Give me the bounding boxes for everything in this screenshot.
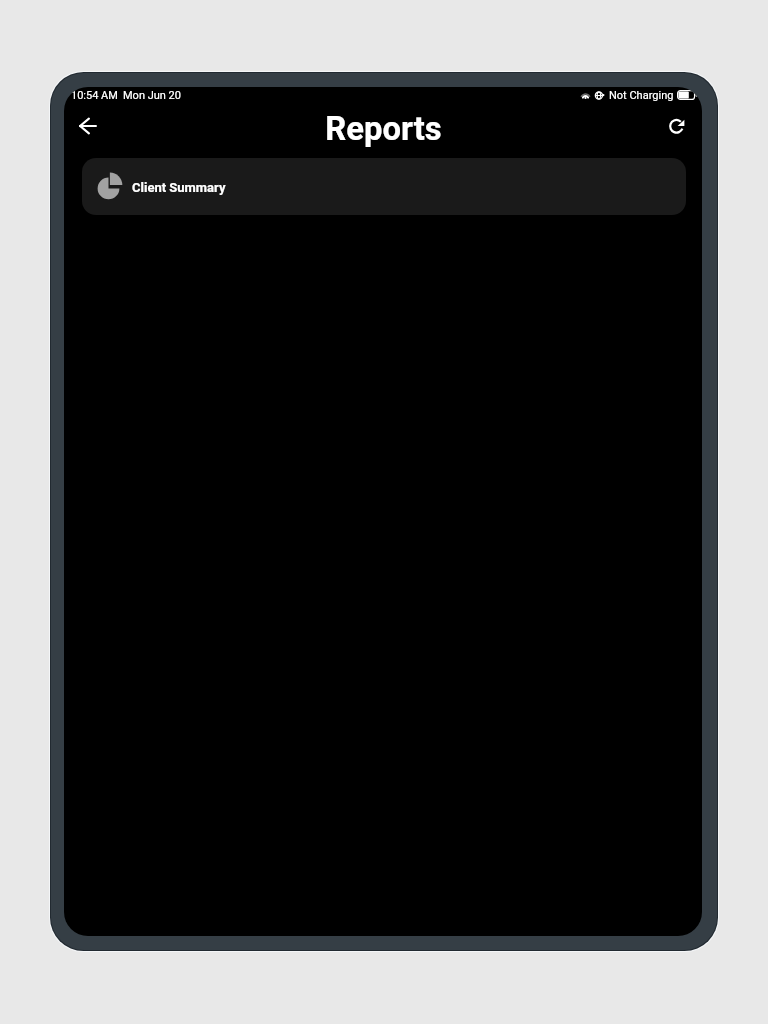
staticText: 10:54 AM [71,89,118,102]
button[interactable]: Refresh [657,106,697,146]
staticText: Reports [325,110,442,148]
staticText: Mon Jun 20 [123,89,181,102]
button[interactable]: Back [66,104,110,148]
button[interactable]: Client Summary [82,158,686,215]
staticText: Not Charging [609,89,674,102]
staticText: Client Summary [132,180,226,195]
